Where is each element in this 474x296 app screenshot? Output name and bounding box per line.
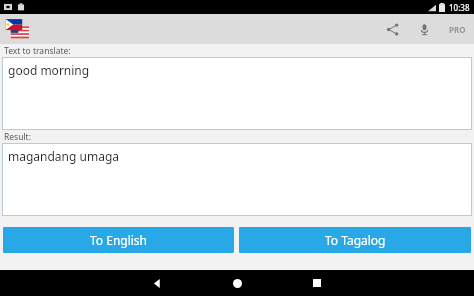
button[interactable]: Back — [144, 270, 170, 296]
staticText: good morning — [8, 62, 90, 78]
button[interactable]: To Tagalog — [239, 227, 471, 253]
staticText: Text to translate: — [4, 45, 71, 57]
button[interactable]: PRO — [445, 16, 470, 42]
button[interactable]: Share — [379, 16, 405, 42]
button[interactable]: Language pair — [3, 15, 31, 43]
button[interactable]: good morning — [2, 57, 472, 130]
button[interactable]: To English — [3, 227, 234, 253]
staticText: 10:38 — [449, 2, 470, 13]
staticText: Result: — [4, 131, 31, 143]
staticText: magandang umaga — [8, 148, 119, 164]
staticText: To Tagalog — [325, 232, 386, 248]
staticText: To English — [90, 232, 148, 248]
staticText: PRO — [449, 24, 466, 35]
button[interactable]: Recent apps — [304, 270, 330, 296]
button[interactable]: magandang umaga — [2, 143, 472, 216]
button[interactable]: Home — [224, 270, 250, 296]
button[interactable]: Voice input — [411, 16, 437, 42]
